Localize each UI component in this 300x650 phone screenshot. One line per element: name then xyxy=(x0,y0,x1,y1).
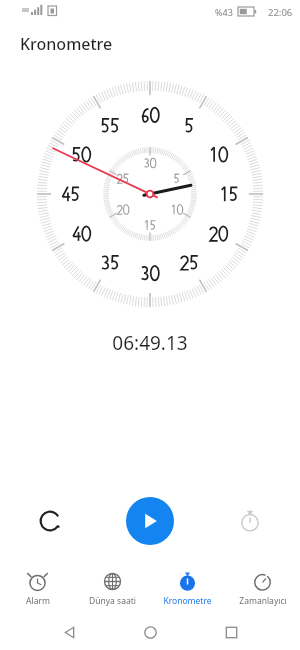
staticText: Kronometre xyxy=(20,33,113,55)
button[interactable]: Reset xyxy=(0,486,100,556)
button[interactable]: Kronometre xyxy=(150,564,225,614)
button[interactable]: Zamanlayıcı xyxy=(225,564,300,614)
button[interactable]: Alarm xyxy=(0,564,75,614)
staticText: Kronometre xyxy=(163,595,212,607)
button[interactable]: Dünya saati xyxy=(75,564,150,614)
staticText: Zamanlayıcı xyxy=(239,595,287,607)
staticText: Alarm xyxy=(26,595,50,607)
button[interactable]: Recent apps xyxy=(214,615,248,649)
staticText: %43 xyxy=(215,6,233,18)
button[interactable]: Home xyxy=(133,615,167,649)
button[interactable]: Back xyxy=(52,615,86,649)
staticText: Dünya saati xyxy=(89,595,136,607)
button[interactable]: Start xyxy=(126,497,174,545)
staticText: 06:49.13 xyxy=(0,330,300,356)
button[interactable]: Lap xyxy=(200,486,300,556)
staticText: 22:06 xyxy=(268,6,293,19)
